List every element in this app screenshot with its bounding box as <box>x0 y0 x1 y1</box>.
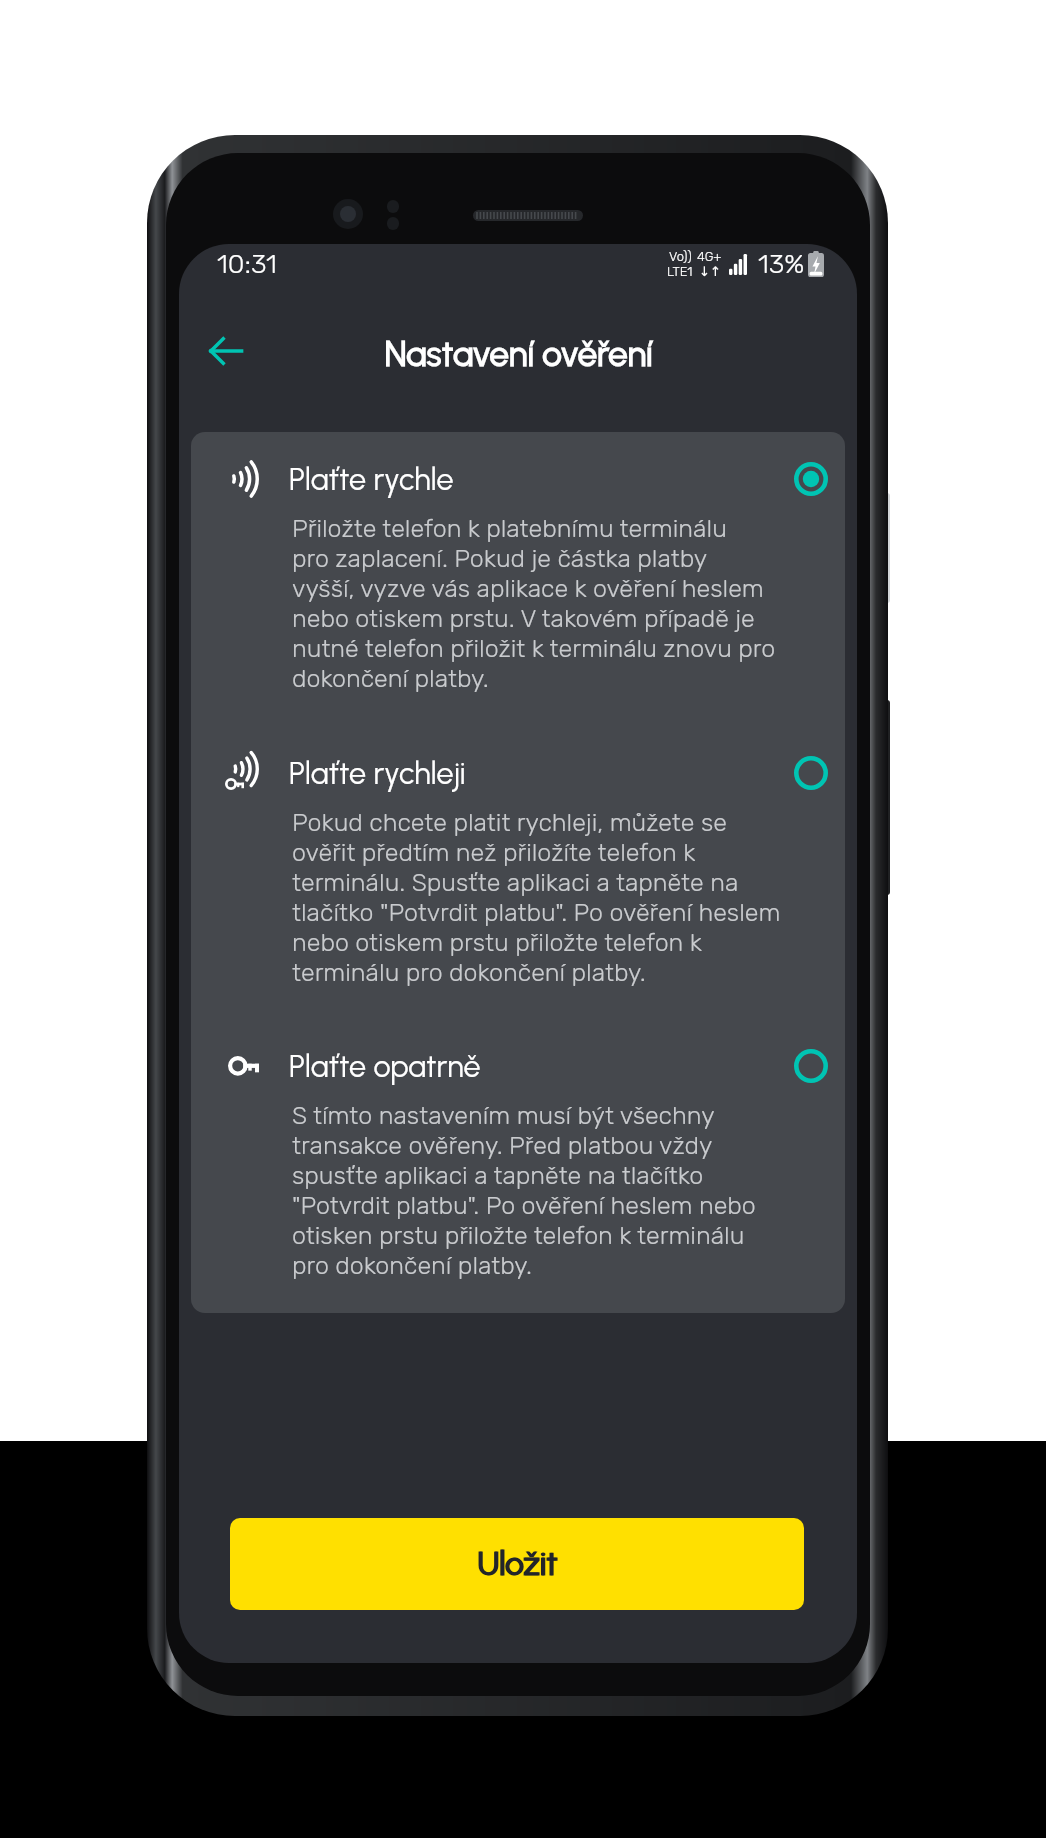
button[interactable]: Uložit <box>230 1518 804 1610</box>
staticText: nebo otiskem prstu. V takovém případě je <box>292 604 755 634</box>
staticText: Pokud chcete platit rychleji, můžete se <box>292 808 727 838</box>
staticText: Přiložte telefon k platebnímu terminálu <box>292 514 727 544</box>
staticText: Plaťte rychleji <box>289 755 466 792</box>
staticText: "Potvrdit platbu". Po ověření heslem neb… <box>292 1191 756 1221</box>
staticText: Plaťte opatrně <box>289 1048 481 1085</box>
staticText: 4G+ <box>697 249 722 264</box>
staticText: LTE1 <box>667 264 693 279</box>
staticText: tlačítko "Potvrdit platbu". Po ověření h… <box>292 898 781 928</box>
staticText: ↓↑ <box>699 264 721 279</box>
staticText: nutné telefon přiložit k terminálu znovu… <box>292 634 776 664</box>
staticText: Vo)) <box>669 249 692 264</box>
staticText: 13% <box>758 248 805 280</box>
staticText: Nastavení ověření <box>384 333 653 375</box>
staticText: vyšší, vyzve vás aplikace k ověření hesl… <box>292 574 764 604</box>
button[interactable]: Plaťte rychle <box>191 455 845 694</box>
staticText: spusťte aplikaci a tapněte na tlačítko <box>292 1161 704 1191</box>
staticText: transakce ověřeny. Před platbou vždy <box>292 1131 713 1161</box>
staticText: Uložit <box>478 1544 559 1584</box>
staticText: ověřit předtím než přiložíte telefon k <box>292 838 696 868</box>
button[interactable]: Back <box>196 321 256 381</box>
staticText: pro dokončení platby. <box>292 1251 533 1281</box>
staticText: Uložit <box>477 1544 558 1584</box>
staticText: S tímto nastavením musí být všechny <box>292 1101 715 1131</box>
staticText: nebo otiskem prstu přiložte telefon k <box>292 928 702 958</box>
staticText: terminálu. Spusťte aplikaci a tapněte na <box>292 868 739 898</box>
staticText: pro zaplacení. Pokud je částka platby <box>292 544 708 574</box>
staticText: dokončení platby. <box>292 664 489 694</box>
button[interactable]: Plaťte opatrně <box>191 1042 845 1281</box>
staticText: Plaťte rychle <box>289 461 454 498</box>
staticText: 10:31 <box>217 248 277 280</box>
staticText: terminálu pro dokončení platby. <box>292 958 646 988</box>
staticText: otisken prstu přiložte telefon k terminá… <box>292 1221 745 1251</box>
button[interactable]: Plaťte rychleji <box>191 749 845 988</box>
